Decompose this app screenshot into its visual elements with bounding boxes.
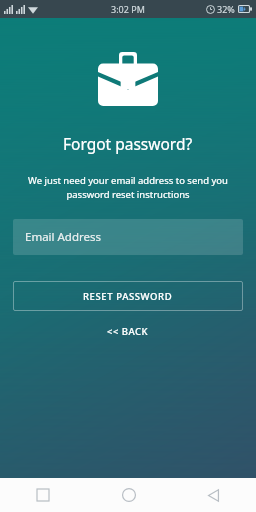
other: App logo — [98, 52, 158, 106]
button[interactable]: RESET PASSWORD — [13, 281, 243, 311]
button[interactable]: Email Address — [13, 219, 243, 255]
staticText: << BACK — [107, 325, 149, 338]
staticText: Forgot password? — [63, 133, 193, 154]
button[interactable]: << BACK — [93, 320, 163, 343]
button[interactable]: Back — [171, 478, 256, 512]
button[interactable]: Home — [86, 478, 171, 512]
staticText: 3:02 PM — [111, 3, 145, 15]
staticText: Email Address — [25, 229, 102, 245]
staticText: RESET PASSWORD — [83, 290, 173, 303]
button[interactable]: Recent apps — [0, 478, 86, 512]
staticText: 32% — [217, 3, 235, 15]
staticText: We just need your email address to send … — [16, 174, 240, 201]
